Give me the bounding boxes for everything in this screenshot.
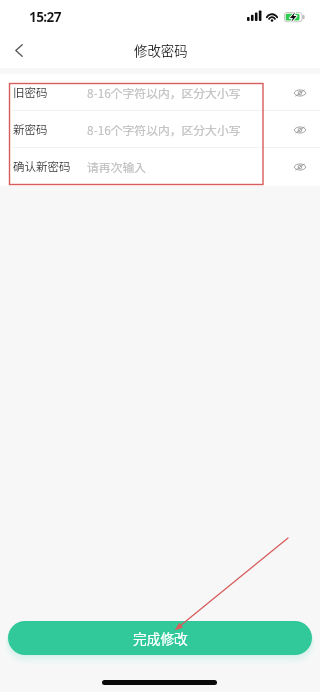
staticText: 8-16个字符以内，区分大小写	[87, 121, 241, 138]
staticText: 8-16个字符以内，区分大小写	[87, 84, 241, 101]
staticText: 请再次输入	[87, 158, 146, 175]
button[interactable]: Show password	[281, 74, 319, 111]
staticText: 新密码	[13, 121, 48, 138]
button[interactable]: Show password	[281, 148, 319, 185]
staticText: 旧密码	[13, 84, 48, 101]
staticText: 完成修改	[133, 628, 188, 648]
button[interactable]: Back	[3, 34, 35, 68]
button[interactable]: Show password	[281, 111, 319, 148]
staticText: 确认新密码	[13, 158, 71, 175]
staticText: 15:27	[29, 7, 61, 26]
staticText: 修改密码	[134, 40, 188, 59]
button[interactable]: 完成修改	[8, 621, 312, 655]
